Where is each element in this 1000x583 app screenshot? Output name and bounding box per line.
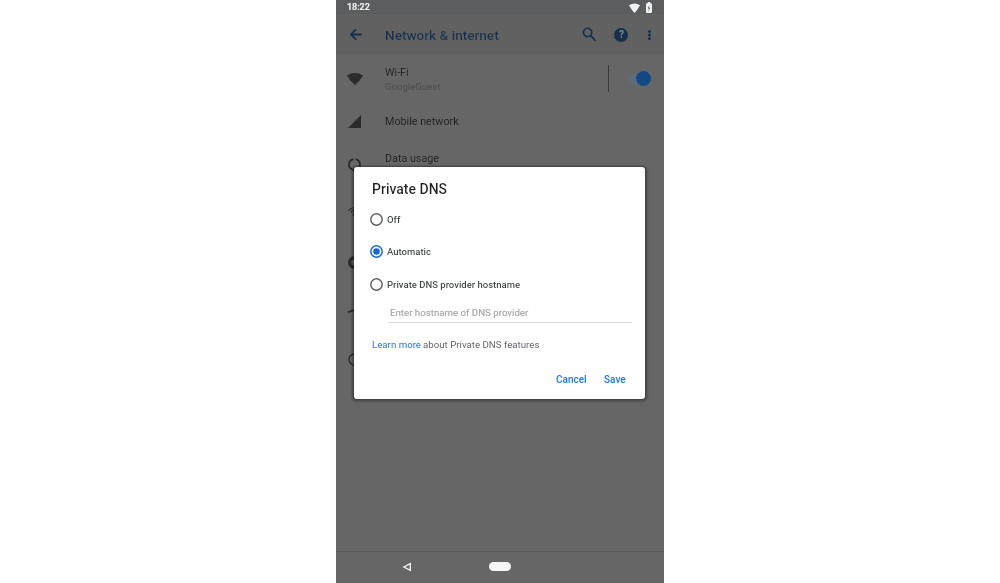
- button[interactable]: Data usage: [336, 140, 664, 177]
- staticText: Cancel: [556, 374, 587, 386]
- button[interactable]: Cancel: [549, 370, 594, 390]
- button[interactable]: Automatic: [354, 235, 645, 267]
- staticText: 18:22: [347, 2, 370, 13]
- staticText: Mobile network: [385, 115, 459, 128]
- button[interactable]: More options: [632, 18, 664, 50]
- button[interactable]: Private DNS provider hostname: [354, 268, 645, 300]
- staticText: Automatic: [387, 246, 431, 257]
- button[interactable]: Home: [489, 562, 511, 571]
- button[interactable]: Wi-Fi: [336, 54, 664, 103]
- button[interactable]: Mobile network: [336, 103, 664, 140]
- staticText: ?: [619, 29, 624, 41]
- staticText: Data usage: [385, 152, 439, 165]
- staticText: Network & internet: [385, 27, 499, 43]
- staticText: about Private DNS features: [423, 339, 540, 350]
- staticText: Off: [387, 214, 401, 225]
- button[interactable]: Back: [396, 556, 418, 578]
- staticText: Airplane mode: [385, 304, 455, 317]
- button[interactable]: Data Saver: [336, 244, 664, 281]
- staticText: Wi-Fi: [385, 66, 409, 79]
- staticText: Private DNS: [372, 181, 448, 197]
- button[interactable]: Search: [571, 16, 607, 52]
- staticText: Hotspot & tethering: [385, 207, 479, 220]
- button[interactable]: Wi-Fi on: [624, 63, 658, 94]
- button[interactable]: Help: [603, 16, 639, 52]
- staticText: Save: [604, 374, 626, 386]
- button[interactable]: Airplane mode: [336, 292, 664, 329]
- staticText: GoogleGuest: [385, 81, 441, 92]
- button[interactable]: Off: [354, 203, 645, 235]
- staticText: Private DNS provider hostname: [387, 279, 521, 290]
- staticText: Enter hostname of DNS provider: [390, 307, 529, 318]
- button[interactable]: Navigate up: [337, 15, 375, 53]
- button[interactable]: Learn more: [372, 339, 422, 350]
- button[interactable]: Hotspot & tethering: [336, 195, 664, 232]
- button[interactable]: VPN: [336, 341, 664, 378]
- button[interactable]: Save: [597, 370, 633, 390]
